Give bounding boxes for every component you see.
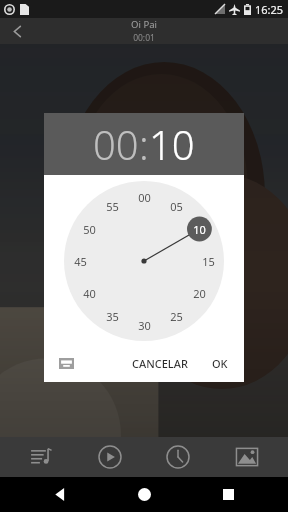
button[interactable]: 35 [101,305,123,327]
button[interactable]: 50 [78,218,100,240]
staticText: 10 [193,222,206,237]
staticText: 50 [83,222,96,237]
staticText: 35 [106,309,119,324]
button[interactable]: 05 [165,195,187,217]
staticText: 40 [83,286,96,301]
staticText: 00:01 [133,32,155,44]
button[interactable]: CANCELAR [126,352,194,375]
staticText: 16:25 [255,2,284,17]
button[interactable]: 15 [197,250,219,272]
button[interactable]: 00 [133,186,155,208]
button[interactable]: OK [206,352,234,375]
button[interactable]: Image [219,437,275,477]
button[interactable]: Timer [150,437,206,477]
staticText: CANCELAR [132,356,188,371]
button[interactable]: 40 [78,282,100,304]
button[interactable]: 45 [69,250,91,272]
staticText: OK [212,356,228,371]
staticText: 25 [170,309,183,324]
staticText: Oi Pai [131,18,157,31]
button[interactable]: 10 [188,218,210,240]
button[interactable]: 30 [133,314,155,336]
button[interactable]: Keyboard input [54,351,78,375]
button[interactable]: 10 [149,117,195,171]
button[interactable]: Playlist [13,437,69,477]
button[interactable]: 00 [93,117,139,171]
button[interactable]: 25 [165,305,187,327]
staticText: 30 [138,318,151,333]
button[interactable]: 55 [101,195,123,217]
staticText: 05 [170,199,183,214]
staticText: 45 [74,254,87,269]
button[interactable]: Back [0,18,34,44]
staticText: : [139,117,149,171]
staticText: 15 [202,254,215,269]
staticText: 20 [193,286,206,301]
button[interactable]: Recents [204,477,252,512]
button[interactable]: 20 [188,282,210,304]
button[interactable]: Play [82,437,138,477]
button[interactable]: Back [36,477,84,512]
staticText: 55 [106,199,119,214]
button[interactable]: Home [120,477,168,512]
staticText: 00 [138,190,151,205]
